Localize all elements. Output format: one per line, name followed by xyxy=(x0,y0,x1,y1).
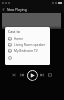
button[interactable]: Living Room speaker xyxy=(5,42,50,48)
button[interactable]: Next xyxy=(38,71,46,79)
button[interactable]: Shuffle xyxy=(10,71,18,79)
staticText: Cast to xyxy=(8,29,20,34)
staticText: Living Room speaker xyxy=(14,43,46,47)
staticText: My Bedroom TV xyxy=(14,49,38,53)
button[interactable]: Play xyxy=(26,69,38,81)
button[interactable]: Previous xyxy=(18,71,26,79)
button[interactable]: Repeat xyxy=(46,71,54,79)
button[interactable]: Cast settings xyxy=(5,55,50,61)
button[interactable]: Back xyxy=(0,6,7,13)
button[interactable]: My Bedroom TV xyxy=(5,48,50,54)
button[interactable]: Home xyxy=(5,36,50,42)
staticText: Now Playing xyxy=(7,7,27,12)
staticText: Home xyxy=(14,37,24,41)
